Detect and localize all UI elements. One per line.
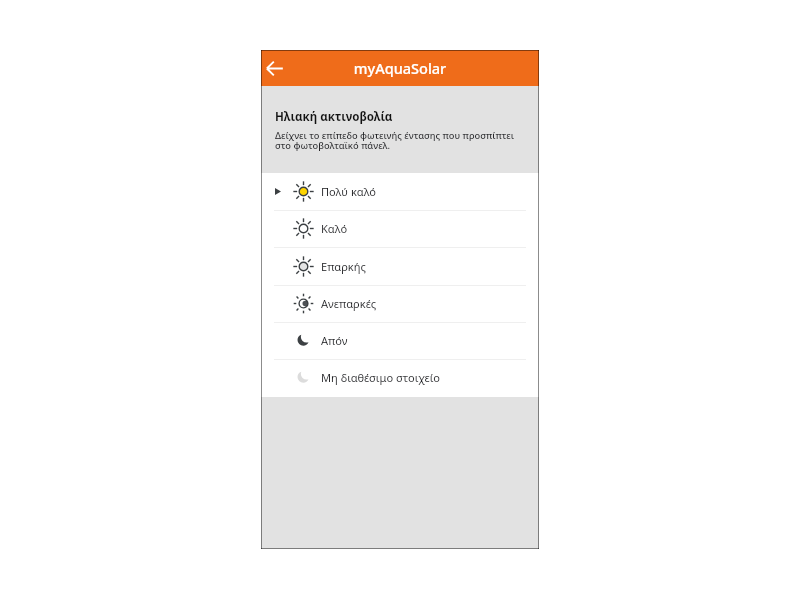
staticText: Καλό — [321, 221, 348, 236]
staticText: Πολύ καλό — [321, 184, 377, 199]
staticText: Μη διαθέσιμο στοιχείο — [321, 370, 440, 385]
button[interactable]: Απόν — [261, 322, 539, 359]
button[interactable]: Μη διαθέσιμο στοιχείο — [261, 359, 539, 396]
button[interactable]: Καλό — [261, 210, 539, 247]
button[interactable]: Επαρκής — [261, 248, 539, 285]
staticText: Ανεπαρκές — [321, 296, 377, 311]
button[interactable]: Back — [261, 50, 289, 86]
staticText: Ηλιακή ακτινοβολία — [275, 109, 393, 125]
button[interactable]: Ανεπαρκές — [261, 285, 539, 322]
staticText: Απόν — [321, 333, 348, 348]
staticText: Επαρκής — [321, 259, 366, 274]
staticText: Δείχνει το επίπεδο φωτεινής έντασης που … — [275, 129, 527, 152]
staticText: myAquaSolar — [261, 58, 539, 78]
button[interactable]: Πολύ καλό — [261, 173, 539, 210]
